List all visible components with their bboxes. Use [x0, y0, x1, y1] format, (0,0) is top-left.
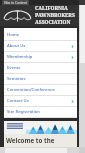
staticText: CALIFORNIA [35, 5, 68, 12]
button[interactable]: Membership [4, 52, 77, 63]
staticText: Skip to Content [4, 1, 27, 4]
button[interactable]: Contact Us [4, 96, 77, 107]
button[interactable]: Skip to Content [2, 0, 29, 5]
staticText: PAWNBROKERS [35, 12, 75, 19]
button[interactable]: Convention/Conference [4, 85, 77, 96]
staticText: Events [7, 65, 21, 71]
staticText: Contact Us [7, 98, 29, 104]
button[interactable]: Events [4, 63, 77, 74]
staticText: Seminars [7, 76, 26, 82]
button[interactable]: Site Registration [4, 107, 77, 118]
staticText: Convention/Conference [7, 87, 55, 93]
button[interactable]: About Us [4, 41, 77, 52]
staticText: Site Registration [7, 109, 40, 115]
staticText: ASSOCIATION [35, 19, 71, 26]
button[interactable]: CALIFORNIA [0, 5, 79, 26]
button[interactable]: Home [4, 30, 77, 41]
staticText: Membership [7, 54, 33, 60]
button[interactable]: Seminars [4, 74, 77, 85]
staticText: Welcome to the [6, 136, 55, 144]
staticText: About Us [7, 43, 26, 49]
staticText: Home [7, 32, 20, 38]
